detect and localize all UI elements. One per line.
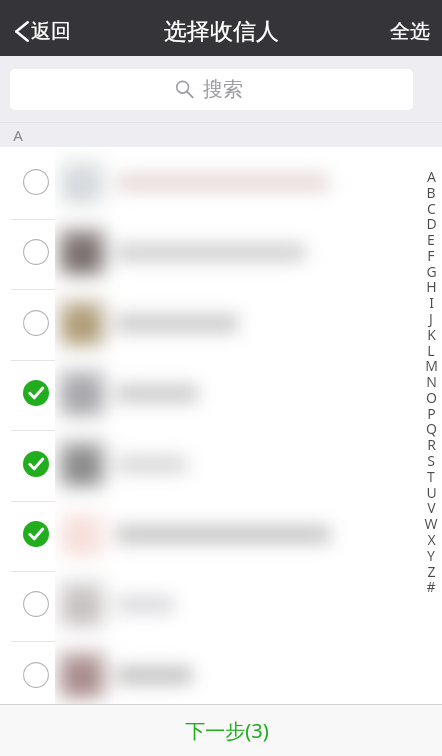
button[interactable]: 返回	[10, 11, 76, 52]
staticText: C	[427, 199, 436, 218]
staticText: V	[427, 498, 436, 517]
staticText: Z	[427, 562, 436, 581]
staticText: U	[426, 483, 437, 502]
staticText: X	[427, 530, 436, 549]
staticText: H	[426, 277, 437, 296]
staticText: L	[427, 341, 435, 360]
staticText: A	[427, 167, 436, 186]
staticText: O	[426, 388, 437, 407]
staticText: W	[424, 514, 438, 533]
staticText: M	[425, 356, 438, 375]
button[interactable]	[0, 569, 442, 639]
button[interactable]: 搜索	[10, 69, 413, 110]
button[interactable]: Alphabet index	[420, 147, 442, 704]
staticText: I	[429, 293, 434, 312]
button[interactable]: 下一步(3)	[0, 705, 442, 756]
button[interactable]	[0, 217, 442, 287]
staticText: A	[13, 125, 23, 145]
staticText: D	[426, 214, 437, 233]
button[interactable]	[0, 288, 442, 358]
staticText: 选择收信人	[164, 17, 279, 46]
staticText: Q	[426, 419, 437, 438]
button[interactable]	[0, 147, 442, 217]
button[interactable]	[0, 499, 442, 569]
staticText: 返回	[31, 19, 71, 44]
staticText: K	[427, 325, 436, 344]
button[interactable]	[0, 640, 442, 710]
button[interactable]	[0, 358, 442, 428]
staticText: #	[426, 577, 436, 596]
button[interactable]	[0, 429, 442, 499]
staticText: F	[427, 246, 435, 265]
staticText: 下一步(3)	[185, 717, 269, 744]
staticText: P	[427, 404, 436, 423]
staticText: E	[427, 230, 435, 249]
staticText: G	[426, 262, 437, 281]
staticText: R	[427, 435, 436, 454]
staticText: 全选	[390, 19, 430, 44]
staticText: N	[426, 372, 437, 391]
button[interactable]: 全选	[386, 11, 432, 52]
staticText: 搜索	[203, 77, 243, 102]
staticText: J	[429, 309, 433, 328]
staticText: T	[427, 467, 435, 486]
staticText: Y	[427, 546, 435, 565]
staticText: S	[427, 451, 435, 470]
staticText: B	[426, 183, 436, 202]
